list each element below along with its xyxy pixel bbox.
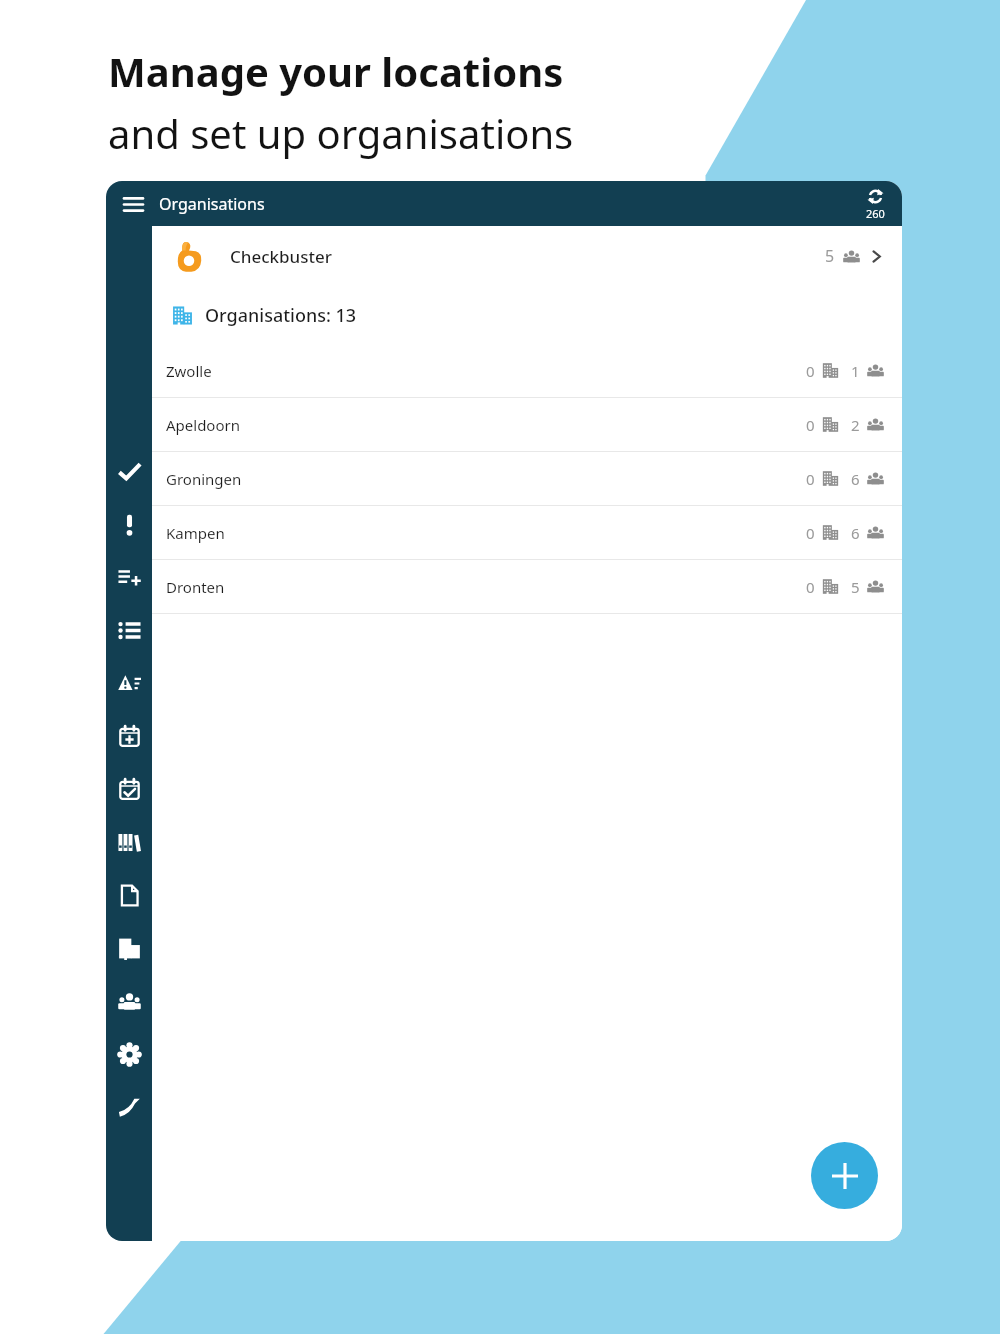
button[interactable]: Settings	[106, 1031, 152, 1077]
button[interactable]: Checkbuster	[152, 226, 902, 286]
staticText: 5	[825, 245, 835, 267]
button[interactable]: Lists	[106, 607, 152, 653]
staticText: 5	[851, 577, 860, 597]
staticText: Manage your locations	[108, 44, 564, 98]
button[interactable]: Add event	[106, 713, 152, 759]
staticText: Dronten	[166, 577, 225, 597]
staticText: Kampen	[166, 523, 225, 543]
button[interactable]: Checks	[106, 448, 152, 494]
staticText: Checkbuster	[230, 245, 332, 268]
button[interactable]: Scheduled	[106, 766, 152, 812]
staticText: 0	[806, 523, 815, 543]
staticText: Groningen	[166, 469, 242, 489]
button[interactable]: Zwolle	[152, 344, 902, 397]
button[interactable]: People	[106, 978, 152, 1024]
staticText: Organisations: 13	[205, 303, 357, 328]
staticText: 1	[851, 361, 860, 381]
button[interactable]: Library	[106, 819, 152, 865]
staticText: 260	[866, 206, 885, 221]
button[interactable]: Apeldoorn	[152, 398, 902, 451]
staticText: 6	[851, 469, 860, 489]
button[interactable]: Issues	[106, 501, 152, 547]
button[interactable]: Open navigation menu	[118, 189, 148, 219]
button[interactable]: Contact	[106, 1084, 152, 1130]
staticText: 0	[806, 361, 815, 381]
button[interactable]: Groningen	[152, 452, 902, 505]
button[interactable]: Add organisation	[811, 1142, 878, 1209]
staticText: Zwolle	[166, 361, 212, 381]
staticText: 2	[851, 415, 860, 435]
button[interactable]: Sync, 260 pending	[863, 187, 888, 221]
button[interactable]: Documents	[106, 872, 152, 918]
button[interactable]: Dronten	[152, 560, 902, 613]
staticText: and set up organisations	[108, 106, 574, 160]
staticText: 6	[851, 523, 860, 543]
staticText: Apeldoorn	[166, 415, 240, 435]
button[interactable]: Kampen	[152, 506, 902, 559]
staticText: Organisations	[159, 193, 265, 215]
button[interactable]: Warnings	[106, 660, 152, 706]
staticText: 0	[806, 577, 815, 597]
button[interactable]: Add list	[106, 554, 152, 600]
staticText: 0	[806, 415, 815, 435]
button[interactable]: Organisations	[106, 925, 152, 971]
staticText: 0	[806, 469, 815, 489]
